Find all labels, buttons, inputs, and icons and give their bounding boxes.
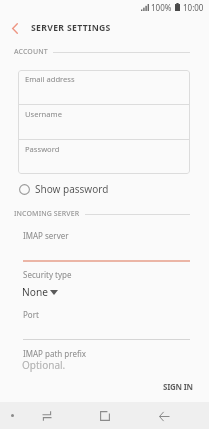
staticText: 100%: [151, 2, 172, 13]
staticText: 10:00: [183, 2, 204, 13]
button[interactable]: Password: [18, 140, 190, 174]
staticText: Optional.: [22, 358, 66, 372]
staticText: Email address: [25, 74, 75, 84]
staticText: ACCOUNT: [14, 47, 48, 57]
button[interactable]: Email address: [18, 70, 190, 104]
button[interactable]: Home: [96, 407, 114, 425]
button[interactable]: Show password: [16, 178, 209, 200]
staticText: IMAP server: [23, 230, 69, 241]
staticText: INCOMING SERVER: [14, 209, 80, 219]
staticText: Show password: [35, 182, 109, 196]
staticText: None: [22, 285, 48, 299]
staticText: Security type: [23, 269, 72, 280]
staticText: SERVER SETTINGS: [31, 22, 111, 34]
button[interactable]: Username: [18, 105, 190, 139]
button[interactable]: SIGN IN: [155, 376, 201, 397]
staticText: Password: [25, 144, 60, 154]
button[interactable]: Back: [155, 407, 173, 425]
button[interactable]: Back: [4, 17, 26, 39]
staticText: IMAP path prefix: [23, 348, 86, 359]
staticText: Username: [25, 109, 62, 119]
button[interactable]: Show keyboard: [6, 409, 19, 422]
staticText: SIGN IN: [163, 381, 193, 392]
button[interactable]: Recent apps: [38, 407, 56, 425]
button[interactable]: None: [22, 285, 58, 299]
staticText: Port: [23, 309, 39, 320]
